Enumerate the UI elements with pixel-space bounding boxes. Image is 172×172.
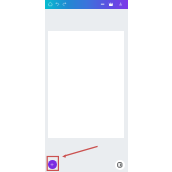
button[interactable]: Pages <box>115 160 125 170</box>
button[interactable]: Share <box>118 0 126 9</box>
button[interactable]: Redo <box>62 0 69 9</box>
button[interactable]: Undo <box>56 0 63 9</box>
button[interactable]: More <box>100 0 107 9</box>
button[interactable]: Add element <box>48 160 57 169</box>
button[interactable]: Pro <box>108 0 115 9</box>
button[interactable]: Home <box>49 0 56 9</box>
